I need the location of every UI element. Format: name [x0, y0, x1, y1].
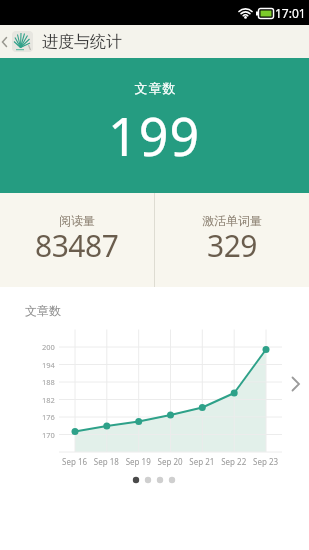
staticText: 文章数: [134, 80, 176, 96]
staticText: 激活单词量: [202, 213, 262, 228]
button[interactable]: 激活单词量: [155, 193, 309, 287]
staticText: 329: [207, 225, 257, 265]
staticText: 83487: [35, 225, 119, 265]
staticText: 17:01: [275, 5, 306, 21]
button[interactable]: 文章数: [0, 58, 309, 193]
staticText: 进度与统计: [42, 32, 122, 52]
staticText: 阅读量: [59, 213, 95, 228]
button[interactable]: 阅读量: [0, 193, 154, 287]
staticText: 199: [108, 100, 201, 164]
button[interactable]: 进度与统计: [0, 25, 309, 58]
